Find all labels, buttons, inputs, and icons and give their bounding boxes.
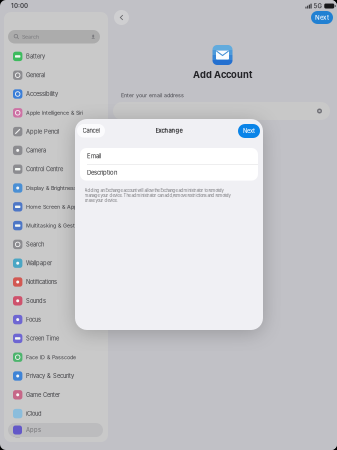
button[interactable]: Focus (4, 310, 108, 329)
button[interactable]: General (4, 66, 108, 85)
staticText: Search (26, 241, 44, 248)
button[interactable]: Next (238, 124, 260, 138)
button[interactable]: Email (80, 148, 258, 164)
staticText: Camera (26, 147, 46, 154)
staticText: Wallet & Apple Pay (26, 429, 73, 436)
button[interactable]: Back (114, 10, 129, 25)
staticText: Battery (26, 53, 45, 60)
staticText: Control Centre (26, 166, 63, 173)
staticText: Email (87, 152, 101, 160)
staticText: General (26, 72, 45, 79)
staticText: Face ID & Passcode (26, 354, 76, 360)
button[interactable]: Multitasking & Gest (4, 216, 108, 235)
staticText: Add Account (193, 69, 252, 80)
staticText: Screen Time (26, 335, 59, 342)
button[interactable]: Accessibility (4, 85, 108, 103)
button[interactable]: Apps (8, 423, 103, 437)
staticText: Enter your email address (121, 92, 184, 98)
button[interactable]: Wallpaper (4, 254, 108, 273)
staticText: Next (243, 127, 255, 134)
staticText: Game Center (26, 391, 60, 398)
button[interactable]: Wallet & Apple Pay (4, 423, 108, 442)
button[interactable]: iCloud (4, 404, 108, 423)
staticText: 5G (313, 2, 321, 10)
button[interactable]: Cancel (77, 124, 105, 137)
staticText: Multitasking & Gest (26, 222, 75, 229)
button[interactable]: Screen Time (4, 329, 108, 348)
button[interactable]: Privacy & Security (4, 367, 108, 385)
staticText: Next (315, 14, 329, 21)
staticText: Apple Pencil (26, 128, 59, 135)
staticText: 10:00 (11, 2, 28, 9)
staticText: Search (22, 33, 39, 40)
button[interactable]: Home Screen & App (4, 197, 108, 216)
staticText: Description (87, 169, 117, 176)
button[interactable]: Apple Pencil (4, 122, 108, 141)
staticText: Notifications (26, 278, 57, 285)
staticText: Exchange (155, 127, 182, 134)
button[interactable]: Game Center (4, 385, 108, 404)
button[interactable]: Notifications (4, 273, 108, 291)
button[interactable]: Battery (4, 47, 108, 66)
staticText: Sounds (26, 297, 46, 304)
staticText: Apps (26, 426, 41, 433)
staticText: Cancel (82, 127, 99, 134)
button[interactable]: Description (80, 165, 258, 181)
staticText: Apple Intelligence & Siri (26, 110, 83, 116)
button[interactable]: Search (4, 235, 108, 254)
button[interactable]: Apple Intelligence & Siri (4, 103, 108, 122)
button[interactable]: Control Centre (4, 160, 108, 179)
staticText: iCloud (26, 410, 42, 417)
staticText: Display & Brightness (26, 185, 77, 191)
button[interactable]: Camera (4, 141, 108, 160)
staticText: Focus (26, 316, 41, 323)
staticText: Home Screen & App (26, 204, 77, 210)
staticText: Accessibility (26, 90, 58, 97)
button[interactable]: Sounds (4, 291, 108, 310)
button[interactable]: Next (311, 11, 333, 24)
staticText: Wallpaper (26, 260, 52, 267)
staticText: Privacy & Security (26, 372, 74, 379)
button[interactable]: Display & Brightness (4, 179, 108, 197)
staticText: Adding an Exchange account will allow th… (85, 188, 231, 203)
button[interactable]: Face ID & Passcode (4, 348, 108, 367)
